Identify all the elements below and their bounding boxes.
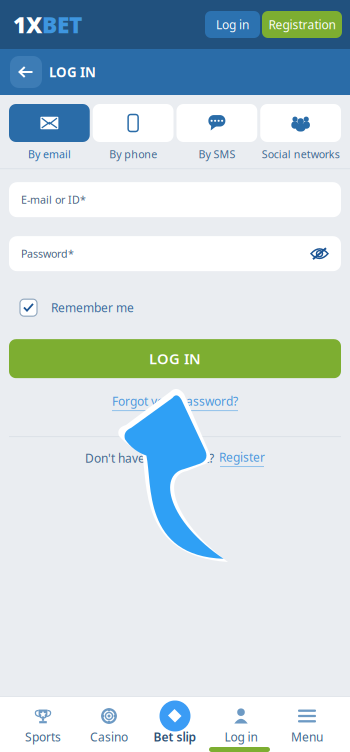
- staticText: Forgot your password?: [112, 393, 238, 409]
- button[interactable]: Show password: [310, 246, 329, 261]
- button[interactable]: Log in: [208, 708, 274, 745]
- staticText: Remember me: [51, 300, 134, 316]
- button[interactable]: LOG IN: [9, 339, 341, 378]
- button[interactable]: Back: [10, 56, 42, 88]
- button[interactable]: By SMS: [176, 104, 257, 161]
- staticText: Registration: [268, 16, 335, 32]
- staticText: Password*: [21, 247, 74, 261]
- staticText: Casino: [90, 729, 128, 745]
- staticText: Log in: [224, 729, 257, 745]
- button[interactable]: Forgot your password?: [112, 393, 238, 411]
- button[interactable]: Sports: [10, 708, 76, 745]
- staticText: Sports: [25, 729, 61, 745]
- staticText: Menu: [291, 729, 323, 745]
- staticText: Don't have an account?: [85, 450, 214, 466]
- button[interactable]: Bet slip: [142, 708, 208, 745]
- staticText: Bet slip: [153, 729, 196, 745]
- button[interactable]: Registration: [262, 11, 342, 38]
- staticText: By phone: [109, 147, 157, 161]
- staticText: BET: [42, 9, 82, 39]
- staticText: Log in: [216, 16, 249, 32]
- button[interactable]: Log in: [205, 11, 260, 38]
- button[interactable]: Social networks: [260, 104, 341, 161]
- button[interactable]: Register: [219, 449, 265, 467]
- button[interactable]: By email: [9, 104, 90, 161]
- staticText: E-mail or ID*: [21, 193, 86, 207]
- button[interactable]: Casino: [76, 708, 142, 745]
- button[interactable]: Menu: [274, 708, 340, 745]
- staticText: LOG IN: [149, 349, 201, 368]
- staticText: Social networks: [262, 147, 340, 161]
- button[interactable]: By phone: [93, 104, 174, 161]
- staticText: By email: [28, 147, 71, 161]
- staticText: Register: [219, 449, 265, 465]
- button[interactable]: Remember me: [9, 299, 341, 316]
- staticText: 1X: [13, 9, 42, 39]
- staticText: By SMS: [198, 147, 235, 161]
- staticText: LOG IN: [49, 63, 96, 81]
